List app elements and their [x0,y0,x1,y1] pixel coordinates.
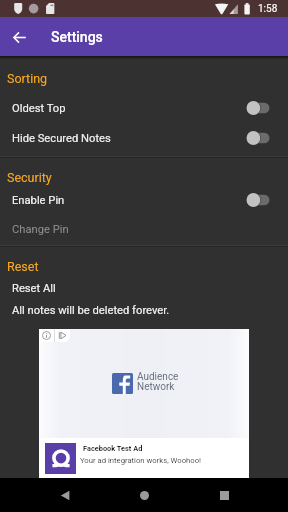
staticText: Settings [51,29,103,45]
staticText: Sorting [7,71,48,86]
staticText: All notes will be deleted forever. [12,304,170,317]
staticText: Oldest Top [12,102,66,115]
button[interactable]: Navigate up [6,24,32,50]
button[interactable]: Oldest Top [0,92,288,122]
button[interactable]: Change Pin [0,216,288,242]
staticText: Your ad integration works, Woohoo! [80,456,202,465]
button[interactable]: Back [52,482,78,508]
staticText: Hide Secured Notes [12,132,111,145]
staticText: Facebook Test Ad [83,444,143,453]
button[interactable]: All notes will be deleted forever. [0,297,288,323]
staticText: Reset All [12,282,56,295]
button[interactable]: Home [131,482,157,508]
staticText: 1:58 [258,3,278,15]
staticText: Change Pin [12,223,69,236]
staticText: Security [7,170,52,185]
staticText: Enable Pin [12,194,65,207]
button[interactable]: Reset All [0,275,288,301]
button[interactable]: Recent apps [211,482,237,508]
button[interactable]: Enable Pin [0,184,288,214]
button[interactable]: Hide Secured Notes [0,122,288,152]
staticText: Reset [7,259,39,274]
staticText: Audience Network [137,371,179,393]
button[interactable]: Audience Network [39,329,249,479]
